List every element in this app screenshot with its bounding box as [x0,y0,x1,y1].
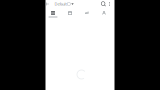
button[interactable]: Tab 4 [95,8,112,19]
button[interactable]: Back [44,0,50,8]
button[interactable]: Search [100,0,107,8]
button[interactable]: Default [54,0,74,8]
button[interactable]: More options [107,0,112,8]
button[interactable]: Tab 2 [61,8,78,19]
button[interactable]: Tab 3 [78,8,95,19]
button[interactable]: Tab 1 [44,8,61,19]
staticText: Default [54,1,66,7]
